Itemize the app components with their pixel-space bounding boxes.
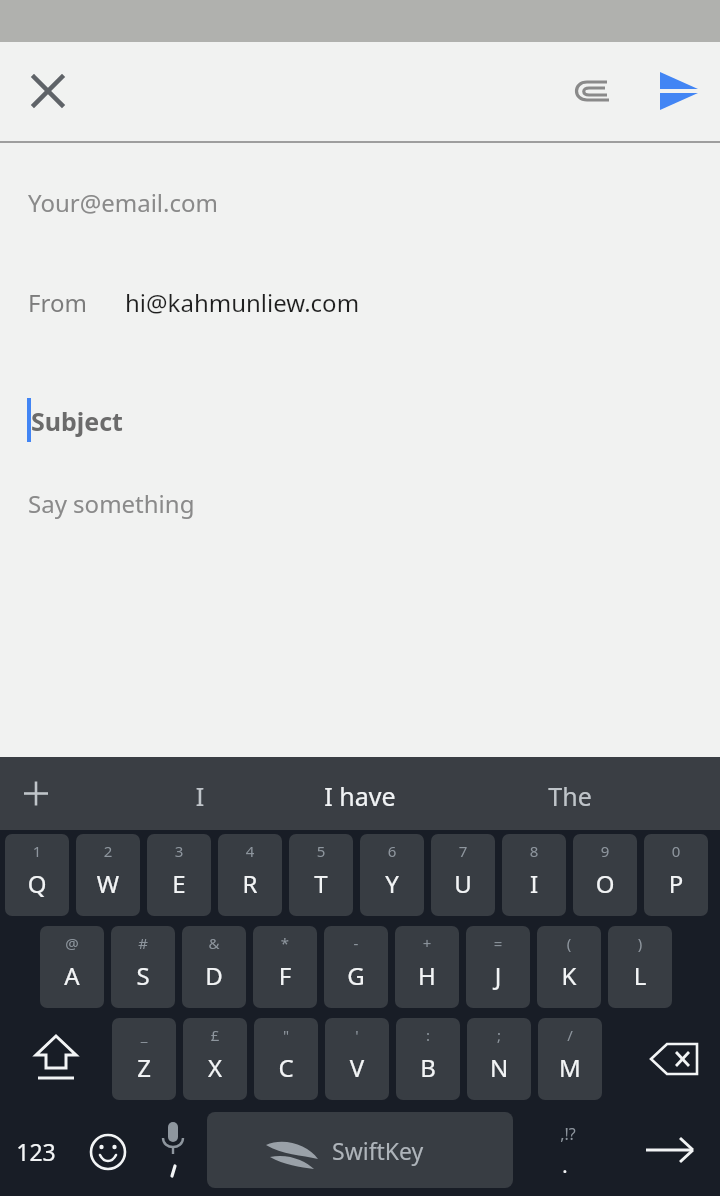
staticText: V [325,1051,389,1084]
button[interactable]: 8 [502,834,566,916]
button[interactable]: 4 [218,834,282,916]
button[interactable]: ( [537,926,601,1008]
button[interactable]: From [0,260,720,344]
staticText: # [111,933,175,953]
button[interactable]: Backspace [627,1018,720,1100]
button[interactable]: 2 [76,834,140,916]
staticText: * [253,933,317,953]
button[interactable]: Send [648,61,708,121]
staticText: G [324,959,388,992]
staticText: . [520,1152,610,1179]
staticText: 123 [0,1136,72,1167]
staticText: H [395,959,459,992]
staticText: " [254,1025,318,1045]
staticText: + [395,933,459,953]
button[interactable]: 6 [360,834,424,916]
staticText: @ [40,933,104,953]
button[interactable]: : [396,1018,460,1100]
staticText: hi@kahmunliew.com [125,286,360,319]
staticText: T [289,867,353,900]
staticText: 1 [5,841,69,861]
button[interactable]: ' [325,1018,389,1100]
staticText: N [467,1051,531,1084]
staticText: / [538,1025,602,1045]
staticText: Y [360,867,424,900]
button[interactable]: Shift [8,1018,104,1100]
button[interactable]: # [111,926,175,1008]
button[interactable]: Your@email.com [0,160,720,244]
button[interactable]: Attach file [563,61,623,121]
staticText: O [573,867,637,900]
staticText: The [468,779,672,813]
button[interactable]: 3 [147,834,211,916]
button[interactable]: Say something [0,465,720,545]
staticText: : [396,1025,460,1045]
staticText: A [40,959,104,992]
button[interactable]: I [100,757,300,830]
button[interactable]: 5 [289,834,353,916]
staticText: D [182,959,246,992]
staticText: Q [5,867,69,900]
button[interactable]: ; [467,1018,531,1100]
button[interactable]: / [538,1018,602,1100]
staticText: 4 [218,841,282,861]
button[interactable]: _ [112,1018,176,1100]
button[interactable]: ) [608,926,672,1008]
button[interactable]: & [182,926,246,1008]
button[interactable]: * [253,926,317,1008]
button[interactable]: = [466,926,530,1008]
staticText: 8 [502,841,566,861]
button[interactable]: £ [183,1018,247,1100]
staticText: U [431,867,495,900]
staticText: 6 [360,841,424,861]
button[interactable]: More options [0,757,72,830]
staticText: F [253,959,317,992]
button[interactable]: The [468,757,672,830]
staticText: ) [608,933,672,953]
button[interactable]: 123 [0,1110,72,1190]
button[interactable]: 1 [5,834,69,916]
button[interactable]: 0 [644,834,708,916]
staticText: I have [258,779,462,813]
staticText: _ [112,1025,176,1045]
staticText: L [608,959,672,992]
button[interactable]: 9 [573,834,637,916]
button[interactable]: Voice input [142,1110,204,1190]
button[interactable]: Close [18,61,78,121]
staticText: 0 [644,841,708,861]
staticText: Subject [31,404,123,438]
button[interactable]: Space [207,1112,513,1188]
button[interactable]: 7 [431,834,495,916]
button[interactable]: @ [40,926,104,1008]
staticText: P [644,867,708,900]
staticText: I [100,779,300,813]
staticText: ,!? [523,1123,613,1145]
staticText: - [324,933,388,953]
staticText: = [466,933,530,953]
staticText: M [538,1051,602,1084]
staticText: Your@email.com [28,186,218,219]
staticText: 7 [431,841,495,861]
staticText: C [254,1051,318,1084]
staticText: R [218,867,282,900]
staticText: ; [467,1025,531,1045]
staticText: 5 [289,841,353,861]
button[interactable]: Subject [0,380,720,460]
button[interactable]: + [395,926,459,1008]
staticText: ( [537,933,601,953]
staticText: I [502,867,566,900]
staticText: Say something [28,487,195,520]
staticText: B [396,1051,460,1084]
staticText: J [466,959,530,992]
staticText: 2 [76,841,140,861]
button[interactable]: I have [258,757,462,830]
staticText: 9 [573,841,637,861]
staticText: 3 [147,841,211,861]
button[interactable]: Emoji [74,1110,142,1190]
button[interactable]: ,!? [520,1110,610,1190]
staticText: X [183,1051,247,1084]
button[interactable]: - [324,926,388,1008]
staticText: SwiftKey [332,1135,424,1166]
button[interactable]: " [254,1018,318,1100]
button[interactable]: Enter [620,1110,720,1190]
